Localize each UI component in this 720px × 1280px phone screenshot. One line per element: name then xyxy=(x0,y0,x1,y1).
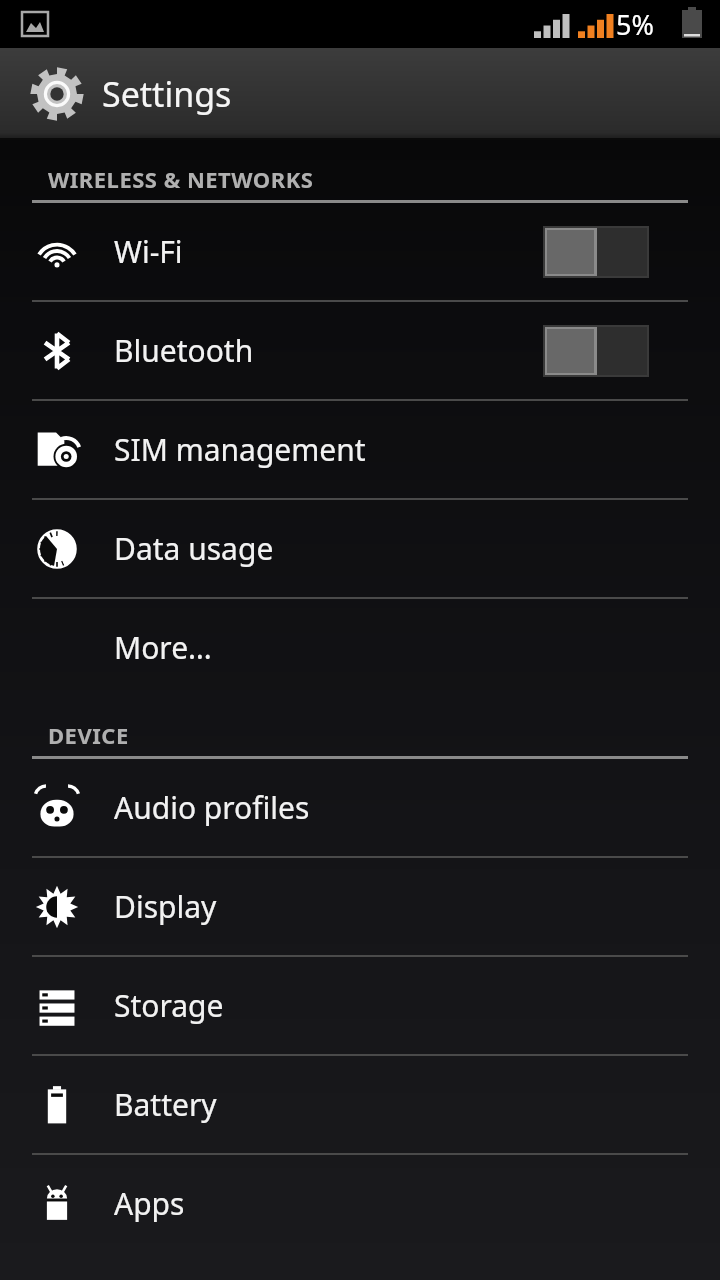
button[interactable]: Battery xyxy=(0,1056,720,1153)
staticText: Battery xyxy=(114,1084,217,1125)
staticText: WIRELESS & NETWORKS xyxy=(48,164,314,194)
staticText: DEVICE xyxy=(48,720,129,750)
staticText: Bluetooth xyxy=(114,330,254,371)
staticText: Data usage xyxy=(114,528,274,569)
button[interactable]: More… xyxy=(0,599,720,696)
staticText: Settings xyxy=(102,71,232,117)
button[interactable]: Data usage xyxy=(0,500,720,597)
staticText: Display xyxy=(114,886,217,927)
staticText: 5% xyxy=(616,6,654,43)
button[interactable]: Wi-Fi toggle xyxy=(544,227,648,277)
staticText: Audio profiles xyxy=(114,787,310,828)
button[interactable]: Bluetooth toggle xyxy=(544,326,648,376)
staticText: More… xyxy=(114,627,212,668)
button[interactable]: Audio profiles xyxy=(0,759,720,856)
button[interactable]: Settings xyxy=(0,48,720,140)
button[interactable]: Bluetooth xyxy=(0,302,720,399)
button[interactable]: Apps xyxy=(0,1155,720,1252)
staticText: SIM management xyxy=(114,429,366,470)
staticText: Wi-Fi xyxy=(114,231,183,272)
button[interactable]: Display xyxy=(0,858,720,955)
button[interactable]: Wi-Fi xyxy=(0,203,720,300)
staticText: Apps xyxy=(114,1183,185,1224)
button[interactable]: Storage xyxy=(0,957,720,1054)
staticText: Storage xyxy=(114,985,224,1026)
button[interactable]: SIM management xyxy=(0,401,720,498)
